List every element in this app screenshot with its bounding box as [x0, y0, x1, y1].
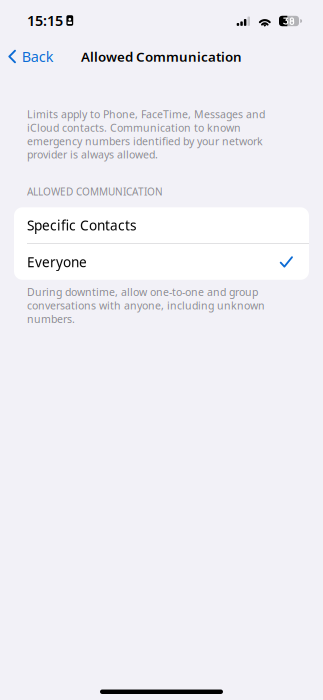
staticText: Allowed Communication	[81, 47, 242, 66]
button[interactable]: Back	[0, 42, 60, 71]
staticText: Everyone	[27, 253, 87, 271]
staticText: Limits apply to Phone, FaceTime, Message…	[27, 107, 265, 162]
staticText: ALLOWED COMMUNICATION	[27, 185, 163, 198]
staticText: 15:15	[27, 11, 63, 30]
staticText: Specific Contacts	[27, 216, 137, 234]
button[interactable]: Specific Contacts	[14, 207, 309, 243]
staticText: Back	[22, 47, 54, 66]
staticText: During downtime, allow one-to-one and gr…	[27, 285, 265, 326]
button[interactable]: Everyone	[14, 244, 309, 280]
